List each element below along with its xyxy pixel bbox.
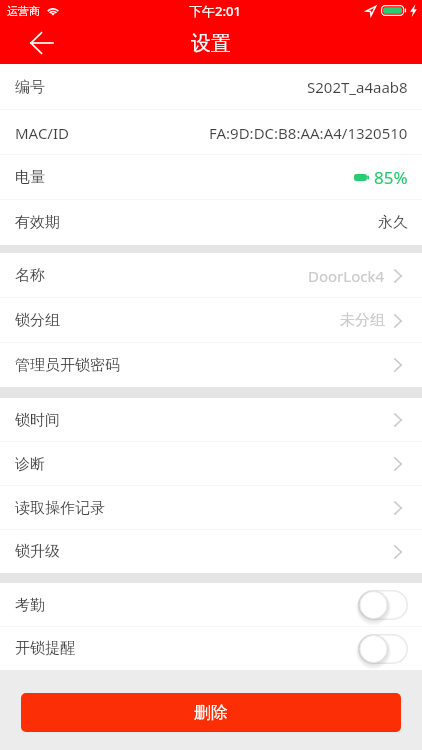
button[interactable]: 锁时间 xyxy=(0,398,422,442)
button[interactable]: Toggle xyxy=(358,634,408,664)
staticText: S202T_a4aab8 xyxy=(307,77,408,97)
staticText: MAC/ID xyxy=(15,123,69,143)
staticText: 设置 xyxy=(191,31,231,56)
staticText: 考勤 xyxy=(15,596,45,615)
staticText: 编号 xyxy=(15,78,45,97)
staticText: DoorLock4 xyxy=(308,266,385,286)
button[interactable]: 读取操作记录 xyxy=(0,486,422,530)
staticText: 电量 xyxy=(15,168,45,187)
button[interactable]: 锁分组 xyxy=(0,298,422,343)
staticText: 永久 xyxy=(378,213,408,232)
staticText: FA:9D:DC:B8:AA:A4/1320510 xyxy=(209,123,408,143)
staticText: 运营商 xyxy=(7,4,40,18)
staticText: 锁时间 xyxy=(15,411,60,430)
staticText: 锁升级 xyxy=(15,542,60,561)
staticText: 下午2:01 xyxy=(189,2,241,20)
staticText: 名称 xyxy=(15,266,45,285)
staticText: 有效期 xyxy=(15,213,60,232)
staticText: 未分组 xyxy=(340,311,385,330)
button[interactable]: 删除 xyxy=(21,693,401,732)
button[interactable]: 诊断 xyxy=(0,442,422,486)
button[interactable]: 管理员开锁密码 xyxy=(0,343,422,387)
staticText: 诊断 xyxy=(15,455,45,474)
staticText: 管理员开锁密码 xyxy=(15,356,120,375)
button[interactable]: 锁升级 xyxy=(0,530,422,573)
staticText: 开锁提醒 xyxy=(15,639,75,658)
staticText: 锁分组 xyxy=(15,311,60,330)
button[interactable]: Back xyxy=(0,26,82,64)
button[interactable]: 名称 xyxy=(0,253,422,298)
button[interactable]: Toggle xyxy=(358,590,408,620)
staticText: 删除 xyxy=(194,702,228,723)
staticText: 85% xyxy=(374,166,408,189)
staticText: 读取操作记录 xyxy=(15,499,105,518)
